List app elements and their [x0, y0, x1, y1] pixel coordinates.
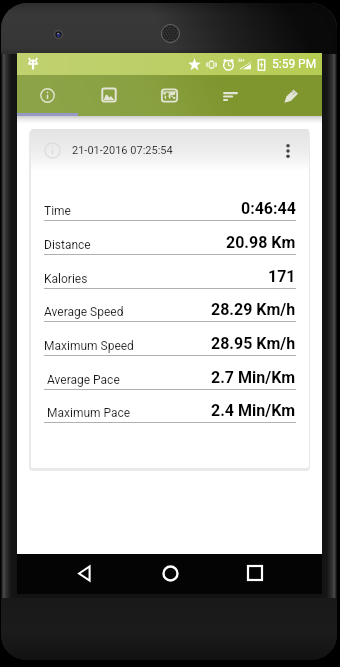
button[interactable]: Statistics: [200, 75, 261, 113]
staticText: Average Pace: [47, 373, 120, 387]
button[interactable]: Photos: [78, 75, 139, 113]
staticText: Maximum Pace: [47, 406, 131, 420]
button[interactable]: Distance: [31, 221, 309, 255]
button[interactable]: Time: [31, 188, 309, 221]
staticText: 0:46:44: [241, 199, 296, 218]
button[interactable]: Edit: [261, 75, 322, 113]
staticText: Average Speed: [44, 305, 124, 319]
staticText: 2.4 Min/Km: [211, 401, 296, 420]
staticText: 21-01-2016 07:25:54: [72, 144, 173, 157]
button[interactable]: Recents: [236, 554, 274, 592]
staticText: 28.95 Km/h: [211, 334, 296, 353]
staticText: 2.7 Min/Km: [211, 368, 296, 387]
staticText: Time: [44, 204, 71, 218]
button[interactable]: Back: [65, 554, 103, 592]
button[interactable]: Kalories: [31, 255, 309, 289]
button[interactable]: Info: [17, 75, 78, 113]
staticText: 171: [268, 267, 296, 286]
button[interactable]: Average Speed: [31, 289, 309, 322]
staticText: Kalories: [44, 272, 88, 286]
staticText: Maximum Speed: [44, 339, 134, 353]
button[interactable]: Home: [151, 554, 189, 592]
button[interactable]: More options: [276, 139, 299, 162]
staticText: 5:59 PM: [272, 57, 317, 71]
button[interactable]: Maximum Speed: [31, 322, 309, 356]
staticText: Distance: [44, 238, 91, 252]
staticText: 28.29 Km/h: [211, 300, 296, 319]
button[interactable]: Maximum Pace: [31, 390, 309, 423]
button[interactable]: Map: [139, 75, 200, 113]
button[interactable]: Average Pace: [31, 356, 309, 390]
staticText: 20.98 Km: [226, 233, 296, 252]
